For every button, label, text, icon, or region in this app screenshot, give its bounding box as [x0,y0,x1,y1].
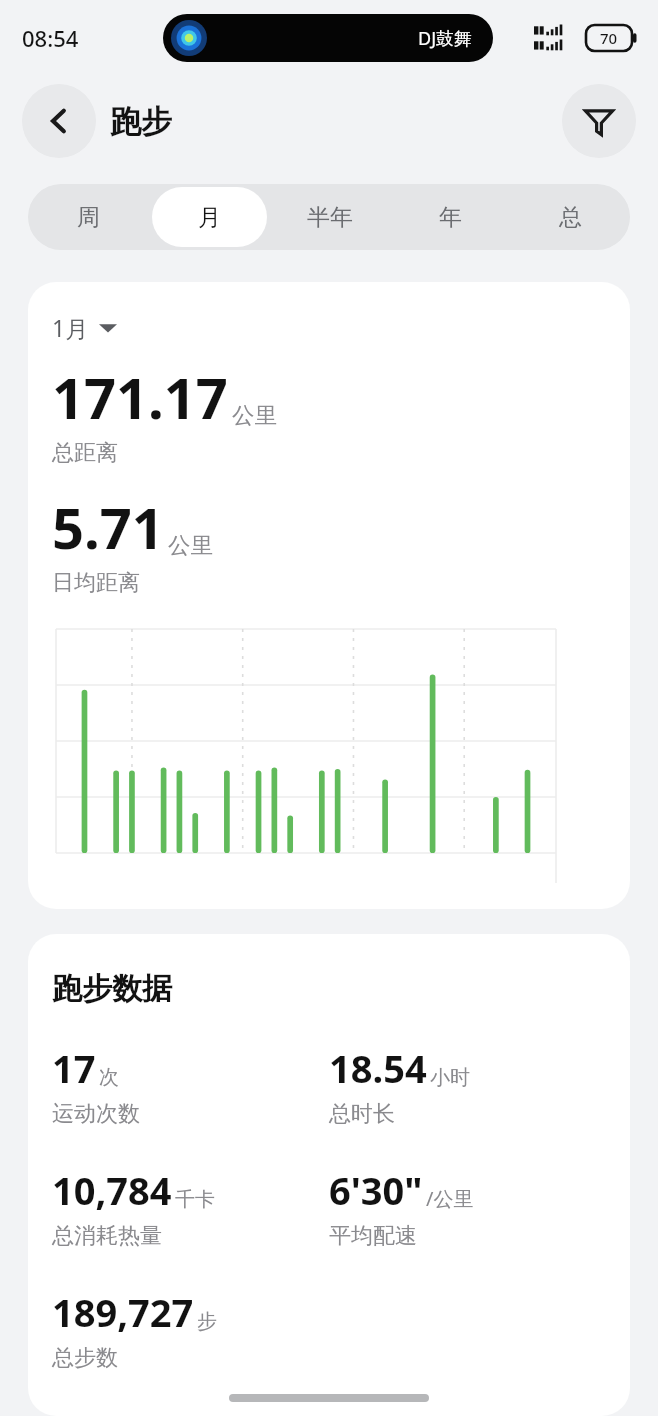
button[interactable]: 周 [31,187,146,247]
button[interactable]: 月 [152,187,267,247]
staticText: DJ鼓舞 [418,26,473,51]
staticText: 总时长 [329,1100,395,1128]
staticText: 跑步数据 [52,970,172,1008]
button[interactable]: 1月 [52,312,117,343]
staticText: 年 [439,203,462,232]
staticText: 总距离 [52,439,118,467]
staticText: 千卡 [175,1187,215,1212]
staticText: 公里 [232,401,277,429]
button[interactable]: Back [22,84,96,158]
staticText: 10,784 [52,1164,172,1216]
staticText: 171.17 [52,359,228,435]
button[interactable]: 年 [393,187,507,247]
staticText: 步 [197,1309,217,1334]
staticText: 公里 [168,531,213,559]
staticText: /公里 [426,1185,474,1212]
staticText: 5.71 [52,489,164,565]
staticText: 小时 [430,1065,470,1090]
staticText: 月 [198,203,221,232]
staticText: 平均配速 [329,1222,417,1250]
staticText: 次 [99,1065,119,1090]
staticText: 跑步 [110,102,172,141]
staticText: 17 [52,1042,96,1094]
button[interactable]: 总 [513,187,627,247]
staticText: 18.54 [329,1042,427,1094]
staticText: 70 [600,28,618,48]
staticText: 日均距离 [52,569,140,597]
staticText: 周 [77,203,100,232]
staticText: 总 [559,203,582,232]
button[interactable]: 半年 [273,187,387,247]
staticText: 6'30" [329,1164,423,1216]
staticText: 总步数 [52,1344,118,1372]
button[interactable]: Filter [562,84,636,158]
staticText: 08:54 [22,23,79,53]
staticText: 运动次数 [52,1100,140,1128]
staticText: 189,727 [52,1286,194,1338]
staticText: 1月 [52,312,89,343]
staticText: 半年 [307,203,353,232]
staticText: 总消耗热量 [52,1222,162,1250]
